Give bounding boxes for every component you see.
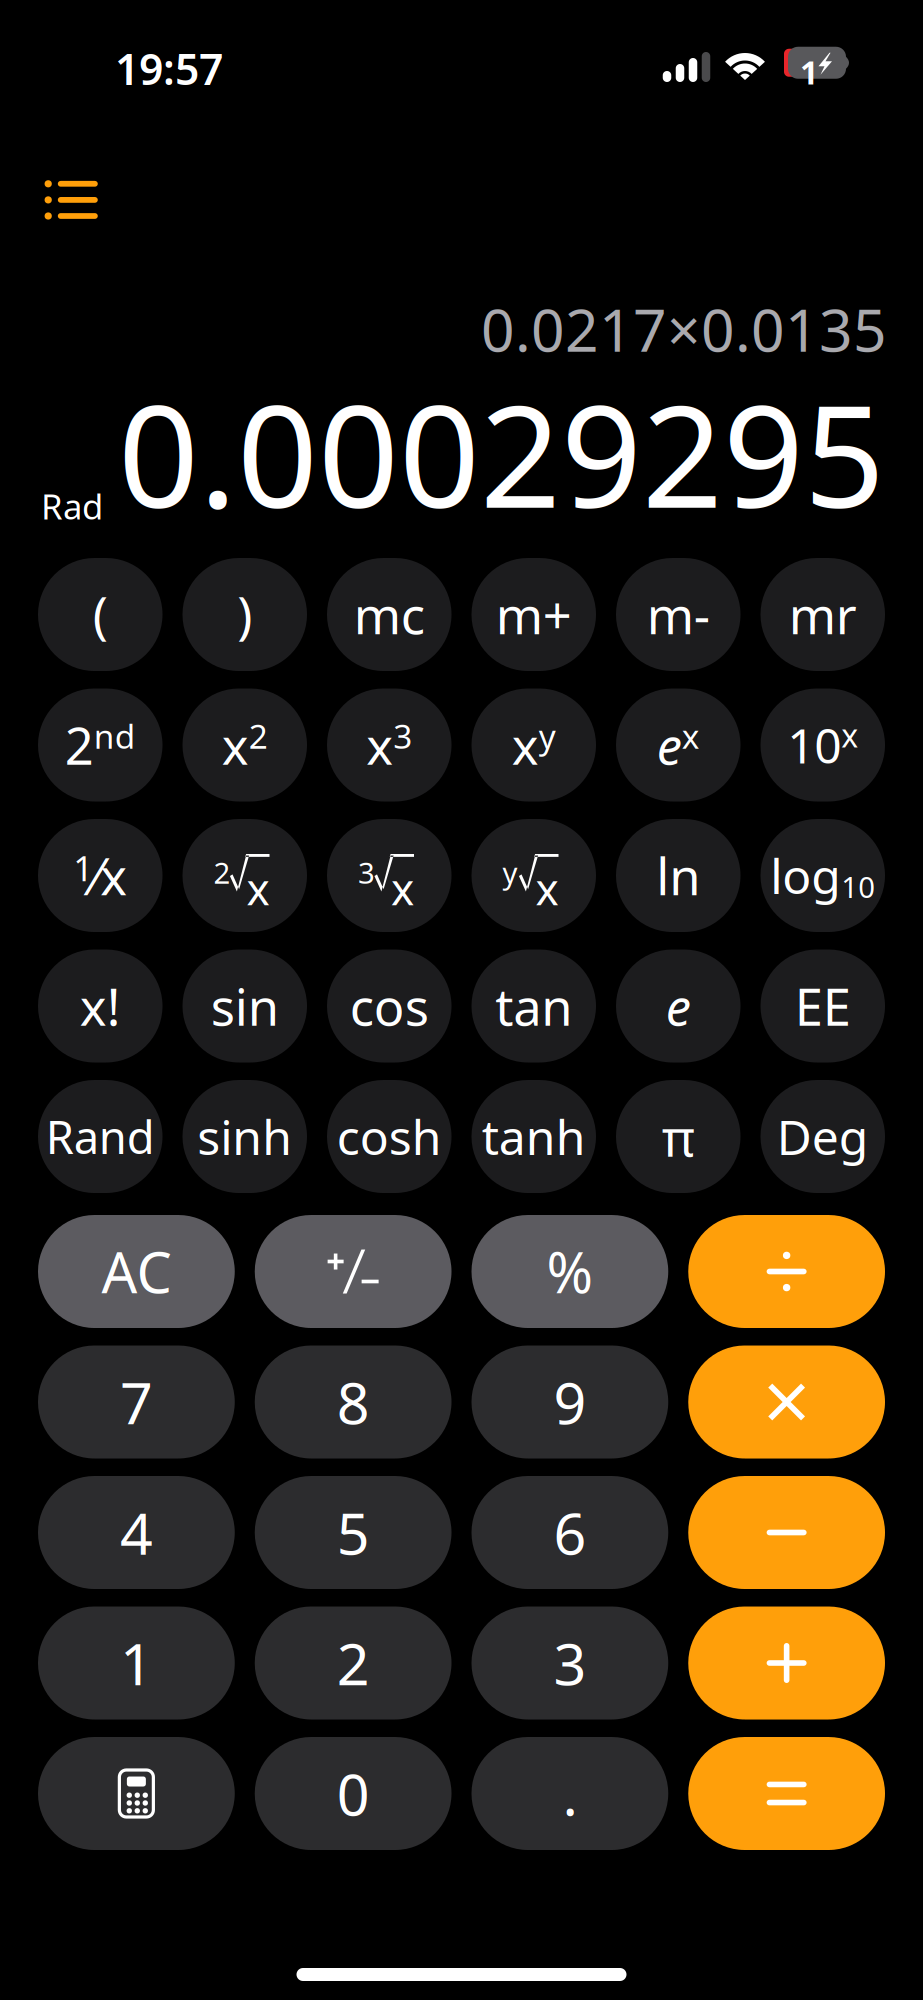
button[interactable]: x!	[38, 949, 162, 1062]
button[interactable]: %	[471, 1215, 668, 1328]
button[interactable]: Basic calculator	[38, 1737, 235, 1850]
staticText: tan	[495, 972, 572, 1040]
button[interactable]: 5	[255, 1476, 452, 1589]
staticText: sinh	[197, 1105, 292, 1168]
staticText: 6	[553, 1494, 586, 1570]
button[interactable]: Subtract	[688, 1476, 885, 1589]
button[interactable]: EE	[760, 949, 885, 1062]
button[interactable]: 2	[182, 819, 307, 932]
button[interactable]: ex	[616, 688, 740, 801]
button[interactable]: .	[471, 1737, 668, 1850]
staticText: 2nd	[65, 711, 136, 779]
button[interactable]: 2nd	[38, 688, 162, 801]
button[interactable]: sin	[182, 949, 307, 1062]
staticText: y	[502, 853, 517, 892]
staticText: m+	[496, 581, 572, 648]
button[interactable]: AC	[38, 1215, 235, 1328]
staticText: xy	[512, 711, 556, 779]
staticText: 10x	[787, 713, 858, 777]
button[interactable]: 3	[471, 1606, 668, 1719]
staticText: 1⁄x	[73, 842, 127, 909]
staticText: 2	[213, 853, 230, 892]
staticText: mr	[789, 581, 857, 648]
staticText: 0	[337, 1755, 370, 1831]
staticText: π	[662, 1103, 695, 1170]
button[interactable]: 6	[471, 1476, 668, 1589]
button[interactable]: tan	[471, 949, 596, 1062]
staticText: x!	[80, 972, 121, 1040]
button[interactable]: y	[471, 819, 596, 932]
button[interactable]: m-	[616, 558, 740, 671]
button[interactable]: log10	[760, 819, 885, 932]
staticText: 3	[358, 853, 375, 892]
button[interactable]: x2	[182, 688, 307, 801]
button[interactable]: xy	[471, 688, 596, 801]
button[interactable]: Rand	[38, 1080, 162, 1193]
button[interactable]: π	[616, 1080, 740, 1193]
staticText: 4	[120, 1494, 153, 1570]
button[interactable]: sinh	[182, 1080, 307, 1193]
staticText: x3	[366, 711, 412, 779]
button[interactable]: 10x	[760, 688, 885, 801]
staticText: mc	[354, 581, 425, 648]
button[interactable]: 4	[38, 1476, 235, 1589]
staticText: (	[93, 581, 108, 648]
button[interactable]: Divide	[688, 1215, 885, 1328]
staticText: ln	[656, 842, 700, 909]
staticText: ex	[657, 711, 700, 779]
button[interactable]: 7	[38, 1345, 235, 1458]
staticText: cos	[350, 972, 429, 1040]
staticText: .	[562, 1755, 577, 1831]
staticText: 3	[553, 1625, 586, 1701]
staticText: m-	[647, 581, 710, 648]
staticText: x	[246, 859, 269, 917]
staticText: 0.0217×0.0135	[481, 290, 887, 368]
staticText: Rad	[41, 483, 103, 529]
button[interactable]: )	[182, 558, 307, 671]
staticText: e	[666, 972, 691, 1040]
button[interactable]: mc	[327, 558, 451, 671]
staticText: 9	[553, 1364, 586, 1440]
button[interactable]: 3	[327, 819, 451, 932]
staticText: Deg	[777, 1105, 869, 1168]
button[interactable]: Multiply	[688, 1345, 885, 1458]
staticText: 8	[337, 1364, 370, 1440]
staticText: tanh	[482, 1105, 586, 1168]
button[interactable]: x3	[327, 688, 451, 801]
staticText: log10	[770, 844, 875, 907]
staticText: x	[391, 859, 414, 917]
button[interactable]: 2	[255, 1606, 452, 1719]
button[interactable]: 8	[255, 1345, 452, 1458]
button[interactable]: History	[27, 162, 116, 238]
staticText: 0.00029295	[118, 359, 885, 547]
button[interactable]: Add	[688, 1606, 885, 1719]
button[interactable]: cosh	[327, 1080, 451, 1193]
staticText: 1	[800, 51, 818, 93]
button[interactable]: Equals	[688, 1737, 885, 1850]
staticText: x	[535, 859, 558, 917]
staticText: 2	[337, 1625, 370, 1701]
button[interactable]: ln	[616, 819, 740, 932]
staticText: 19:57	[115, 40, 223, 97]
staticText: EE	[795, 972, 851, 1040]
staticText: 1	[120, 1625, 153, 1701]
button[interactable]: mr	[760, 558, 885, 671]
staticText: sin	[211, 972, 279, 1040]
button[interactable]: 1	[38, 1606, 235, 1719]
staticText: 7	[120, 1364, 153, 1440]
button[interactable]: tanh	[471, 1080, 596, 1193]
button[interactable]: Plus minus	[255, 1215, 452, 1328]
button[interactable]: 0	[255, 1737, 452, 1850]
button[interactable]: 9	[471, 1345, 668, 1458]
button[interactable]: e	[616, 949, 740, 1062]
staticText: Rand	[46, 1106, 155, 1167]
button[interactable]: cos	[327, 949, 451, 1062]
staticText: AC	[101, 1234, 171, 1309]
button[interactable]: 1⁄x	[38, 819, 162, 932]
button[interactable]: Deg	[760, 1080, 885, 1193]
staticText: )	[237, 581, 252, 648]
staticText: %	[546, 1234, 593, 1309]
button[interactable]: m+	[471, 558, 596, 671]
button[interactable]: (	[38, 558, 162, 671]
staticText: 5	[337, 1494, 370, 1570]
